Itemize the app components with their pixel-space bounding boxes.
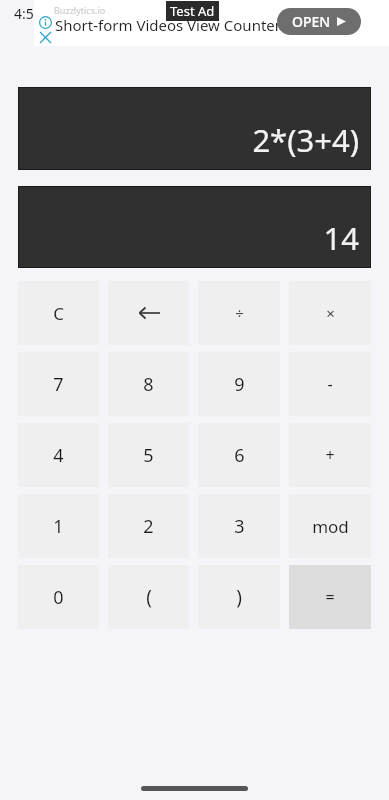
button[interactable]: ( [108, 565, 189, 629]
staticText: = [325, 586, 335, 608]
staticText: 14 [323, 217, 359, 259]
staticText: 2 [143, 514, 154, 539]
staticText: 6 [234, 443, 245, 468]
staticText: 4:59 [14, 4, 42, 23]
button[interactable]: × [289, 281, 371, 345]
button[interactable]: 0 [18, 565, 99, 629]
staticText: OPEN [292, 12, 331, 31]
button[interactable]: + [289, 423, 371, 487]
staticText: 4 [53, 443, 64, 468]
staticText: ÷ [235, 303, 244, 323]
staticText: + [325, 444, 335, 466]
staticText: Short-form Videos View Counter [55, 15, 281, 35]
button[interactable]: 7 [18, 352, 99, 416]
staticText: 8 [143, 372, 154, 397]
button[interactable]: 2*(3+4) [19, 88, 370, 169]
staticText: 2*(3+4) [252, 119, 359, 161]
button[interactable]: 2 [108, 494, 189, 558]
staticText: 1 [53, 514, 64, 539]
staticText: ( [146, 584, 152, 610]
button[interactable]: - [289, 352, 371, 416]
staticText: mod [312, 515, 349, 538]
staticText: 5 [143, 443, 154, 468]
button[interactable]: 1 [18, 494, 99, 558]
button[interactable]: ÷ [198, 281, 280, 345]
staticText: ) [236, 584, 242, 610]
button[interactable]: Backspace [108, 281, 189, 345]
button[interactable]: 6 [198, 423, 280, 487]
button[interactable]: 8 [108, 352, 189, 416]
button[interactable]: 4 [18, 423, 99, 487]
button[interactable]: 9 [198, 352, 280, 416]
staticText: 3 [234, 514, 245, 539]
staticText: Test Ad [170, 2, 215, 20]
button[interactable]: OPEN [277, 8, 361, 35]
button[interactable]: ) [198, 565, 280, 629]
staticText: 0 [53, 585, 64, 610]
staticText: Buzzlytics.io [54, 4, 106, 16]
staticText: - [327, 373, 333, 395]
staticText: × [326, 303, 335, 323]
button[interactable]: mod [289, 494, 371, 558]
button[interactable]: 3 [198, 494, 280, 558]
staticText: 7 [53, 372, 64, 397]
button[interactable]: = [289, 565, 371, 629]
button[interactable]: C [18, 281, 99, 345]
staticText: 9 [234, 372, 245, 397]
button[interactable]: 5 [108, 423, 189, 487]
button[interactable]: 14 [19, 187, 370, 267]
staticText: C [53, 302, 64, 325]
